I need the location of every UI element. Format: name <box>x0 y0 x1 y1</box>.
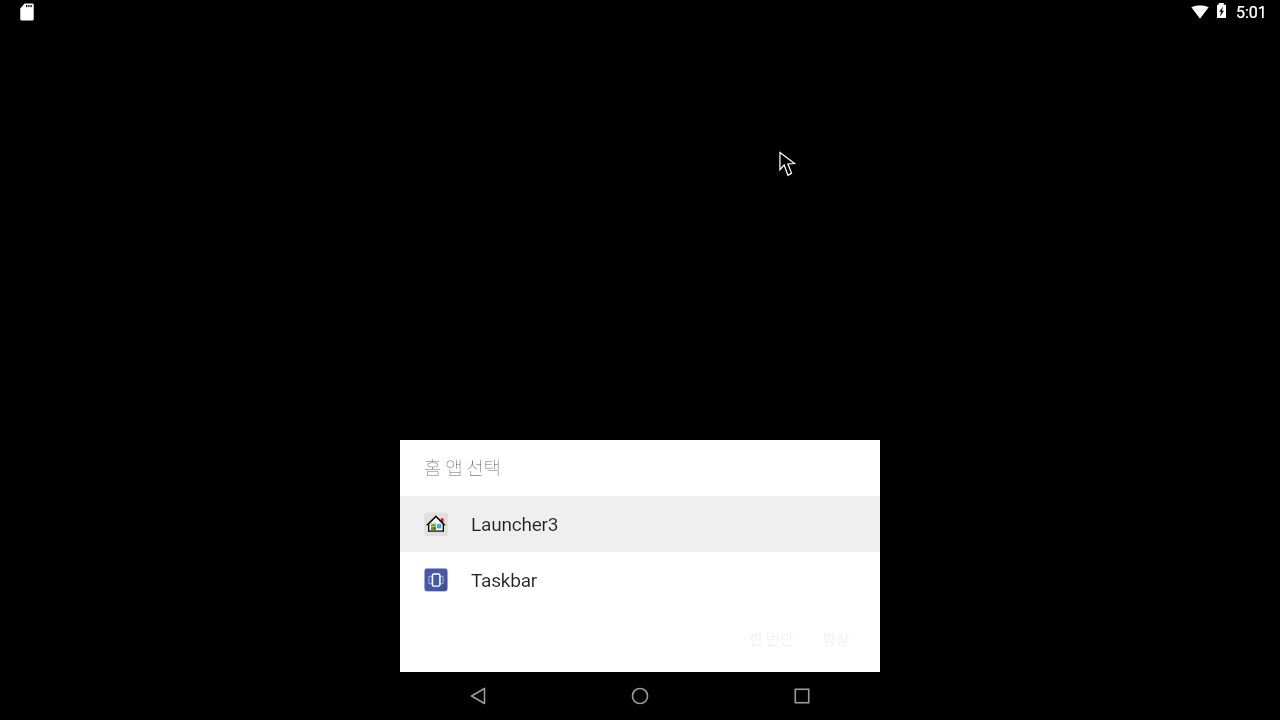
button[interactable]: Taskbar <box>400 552 880 608</box>
button[interactable]: Recents <box>772 672 832 720</box>
staticText: 한 번만 <box>749 628 794 650</box>
button[interactable]: 한 번만 <box>737 621 806 657</box>
button[interactable]: Home <box>610 672 670 720</box>
staticText: Launcher3 <box>471 513 559 535</box>
button[interactable]: Launcher3 <box>400 496 880 552</box>
staticText: 홈 앱 선택 <box>424 453 501 481</box>
staticText: Taskbar <box>471 569 538 591</box>
staticText: 항상 <box>822 628 850 650</box>
button[interactable]: Back <box>448 672 508 720</box>
staticText: 5:01 <box>1236 3 1267 22</box>
